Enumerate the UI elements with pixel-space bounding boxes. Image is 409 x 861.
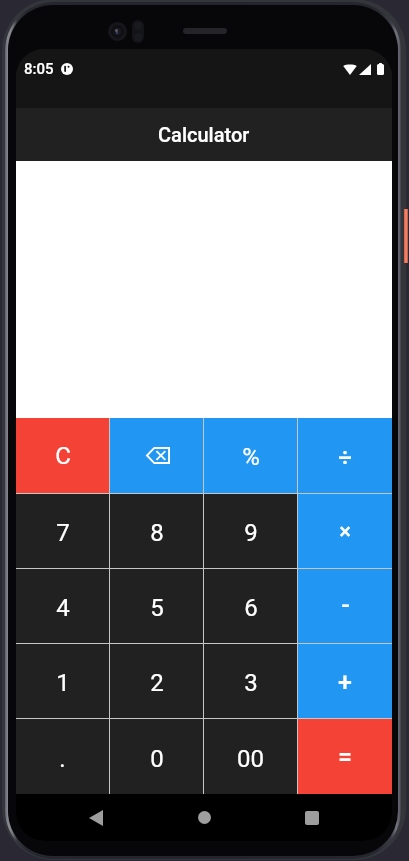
staticText: 5 — [150, 594, 164, 622]
staticText: C — [55, 442, 71, 470]
staticText: 4 — [56, 594, 70, 622]
button[interactable]: 00 — [204, 719, 297, 794]
button[interactable]: = — [298, 719, 392, 794]
button[interactable]: 3 — [204, 644, 297, 718]
button[interactable]: 6 — [204, 569, 297, 643]
button[interactable]: Back — [42, 794, 150, 841]
button[interactable]: 8 — [110, 494, 203, 568]
button[interactable]: × — [298, 494, 392, 568]
button[interactable]: 9 — [204, 494, 297, 568]
staticText: % — [242, 443, 260, 471]
staticText: = — [338, 743, 352, 772]
staticText: Calculator — [158, 123, 250, 146]
button[interactable]: 0 — [110, 719, 203, 794]
staticText: 6 — [244, 594, 258, 622]
staticText: 7 — [56, 519, 70, 547]
staticText: 1 — [56, 669, 70, 697]
button[interactable]: 7 — [16, 494, 109, 568]
staticText: 2 — [150, 669, 164, 697]
button[interactable]: . — [16, 719, 109, 794]
staticText: × — [339, 519, 351, 545]
button[interactable]: Recents — [258, 794, 366, 841]
button[interactable]: C — [16, 418, 109, 493]
button[interactable]: Backspace — [110, 418, 203, 493]
button[interactable]: 5 — [110, 569, 203, 643]
staticText: 0 — [150, 745, 164, 773]
staticText: 00 — [237, 745, 264, 773]
button[interactable]: ÷ — [298, 418, 392, 493]
staticText: 3 — [244, 669, 258, 697]
staticText: - — [341, 591, 350, 620]
other: Backspace — [146, 447, 170, 464]
button[interactable]: Home — [150, 794, 258, 841]
button[interactable]: % — [204, 418, 297, 493]
staticText: 8:05 — [24, 60, 54, 78]
staticText: ÷ — [338, 444, 352, 472]
staticText: . — [59, 745, 66, 773]
button[interactable]: 4 — [16, 569, 109, 643]
button[interactable]: - — [298, 569, 392, 643]
button[interactable]: 2 — [110, 644, 203, 718]
button[interactable]: 1 — [16, 644, 109, 718]
button[interactable]: + — [298, 644, 392, 718]
staticText: 8 — [150, 519, 164, 547]
staticText: + — [338, 668, 352, 697]
staticText: 9 — [244, 519, 258, 547]
